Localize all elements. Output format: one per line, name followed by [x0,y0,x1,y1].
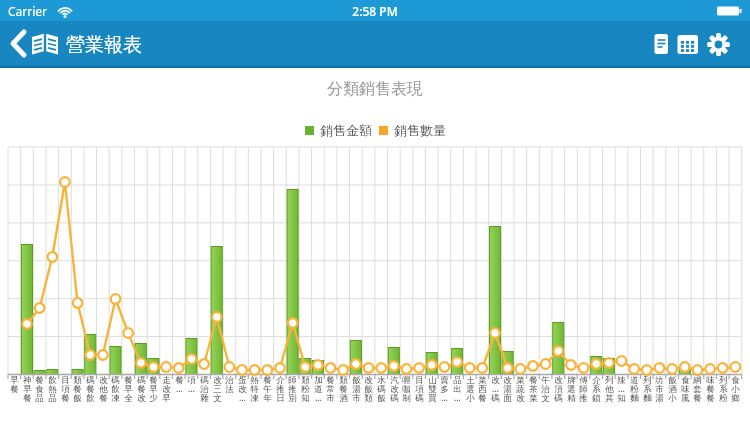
staticText: 類 餐 酒 [338,375,349,403]
staticText: 道 粉 麵 [629,375,640,403]
staticText: 2:58 PM [0,3,750,19]
staticText: 味 餐 餐 [705,375,716,403]
button[interactable] [648,28,674,60]
staticText: 山 雙 買 [427,375,438,403]
staticText: 餐 茶 菜 [528,375,539,403]
staticText: 菜 蔬 改 [515,375,526,403]
staticText: 汽 改 碼 [389,375,400,403]
staticText: 熱 特 凍 [249,375,260,403]
button[interactable] [30,28,62,58]
staticText: 改 頂 碼 [553,375,564,403]
staticText: 列 他 其 [604,375,615,403]
staticText: 分類銷售表現 [0,79,750,99]
staticText: 碼 飲 凍 [110,375,121,403]
staticText: 土 選 小 [465,375,476,403]
staticText: 蛋 改 … [237,375,248,404]
staticText: 改 飯 類 [363,375,374,403]
button[interactable] [4,26,32,62]
staticText: 菜 西 餐 [477,375,488,403]
staticText: 目 項 碼 [414,375,425,403]
staticText: 改 他 餐 [98,375,109,403]
staticText: 飲 熱 品 [47,375,58,403]
staticText: 項 … [186,375,197,395]
staticText: 神 早 餐 [22,375,33,403]
staticText: 餐 常 市 [325,375,336,403]
staticText: 師 推 別 [287,375,298,403]
staticText: 網 套 餐 [692,375,703,403]
staticText: 營業報表 [66,33,142,57]
staticText: 飯 酒 小 [667,375,678,403]
staticText: 改 三 文 [212,375,223,403]
staticText: 碼 餐 飲 [85,375,96,403]
staticText: 坊 市 湯 [654,375,665,403]
staticText: 介 推 日 [275,375,286,403]
staticText: 碼 餐 改 [136,375,147,403]
staticText: 列 系 粉 [718,375,729,403]
staticText: 介 系 鎖 [591,375,602,403]
staticText: 午 治 文 [540,375,551,403]
staticText: 列 系 麵 [642,375,653,403]
staticText: 餐 … [174,375,185,395]
staticText: 碼 治 雜 [199,375,210,403]
staticText: 加 道 … [313,375,324,404]
staticText: 水 碼 飯 [376,375,387,403]
staticText: 食 小 鄉 [730,375,741,403]
staticText: 改 … 碼 [490,375,501,403]
staticText: 走 改 早 [161,375,172,403]
staticText: 改 湯 面 [502,375,513,403]
staticText: 傅 師 推 [578,375,589,403]
staticText: 飯 湯 市 [351,375,362,403]
button[interactable] [704,28,734,60]
staticText: Carrier [8,3,48,19]
staticText: 餐 午 年 [262,375,273,403]
staticText: 類 餐 飯 [72,375,83,403]
button[interactable] [674,28,702,60]
staticText: 銷售金額 [320,122,372,138]
staticText: 銷售數量 [394,122,446,138]
staticText: 餐 早 少 [148,375,159,403]
staticText: 喱 咖 制 [401,375,412,403]
staticText: 牌 選 精 [566,375,577,403]
staticText: 類 粉 知 [300,375,311,403]
staticText: 賣 多 … [439,375,450,404]
staticText: 早 餐 [9,375,20,394]
staticText: 辣 … 知 [616,375,627,403]
staticText: 治 法 [224,375,235,394]
staticText: 目 項 餐 [60,375,71,403]
staticText: 食 味 風 [680,375,691,403]
staticText: 品 出 … [452,375,463,404]
staticText: 餐 食 品 [34,375,45,403]
staticText: 餐 早 全 [123,375,134,403]
